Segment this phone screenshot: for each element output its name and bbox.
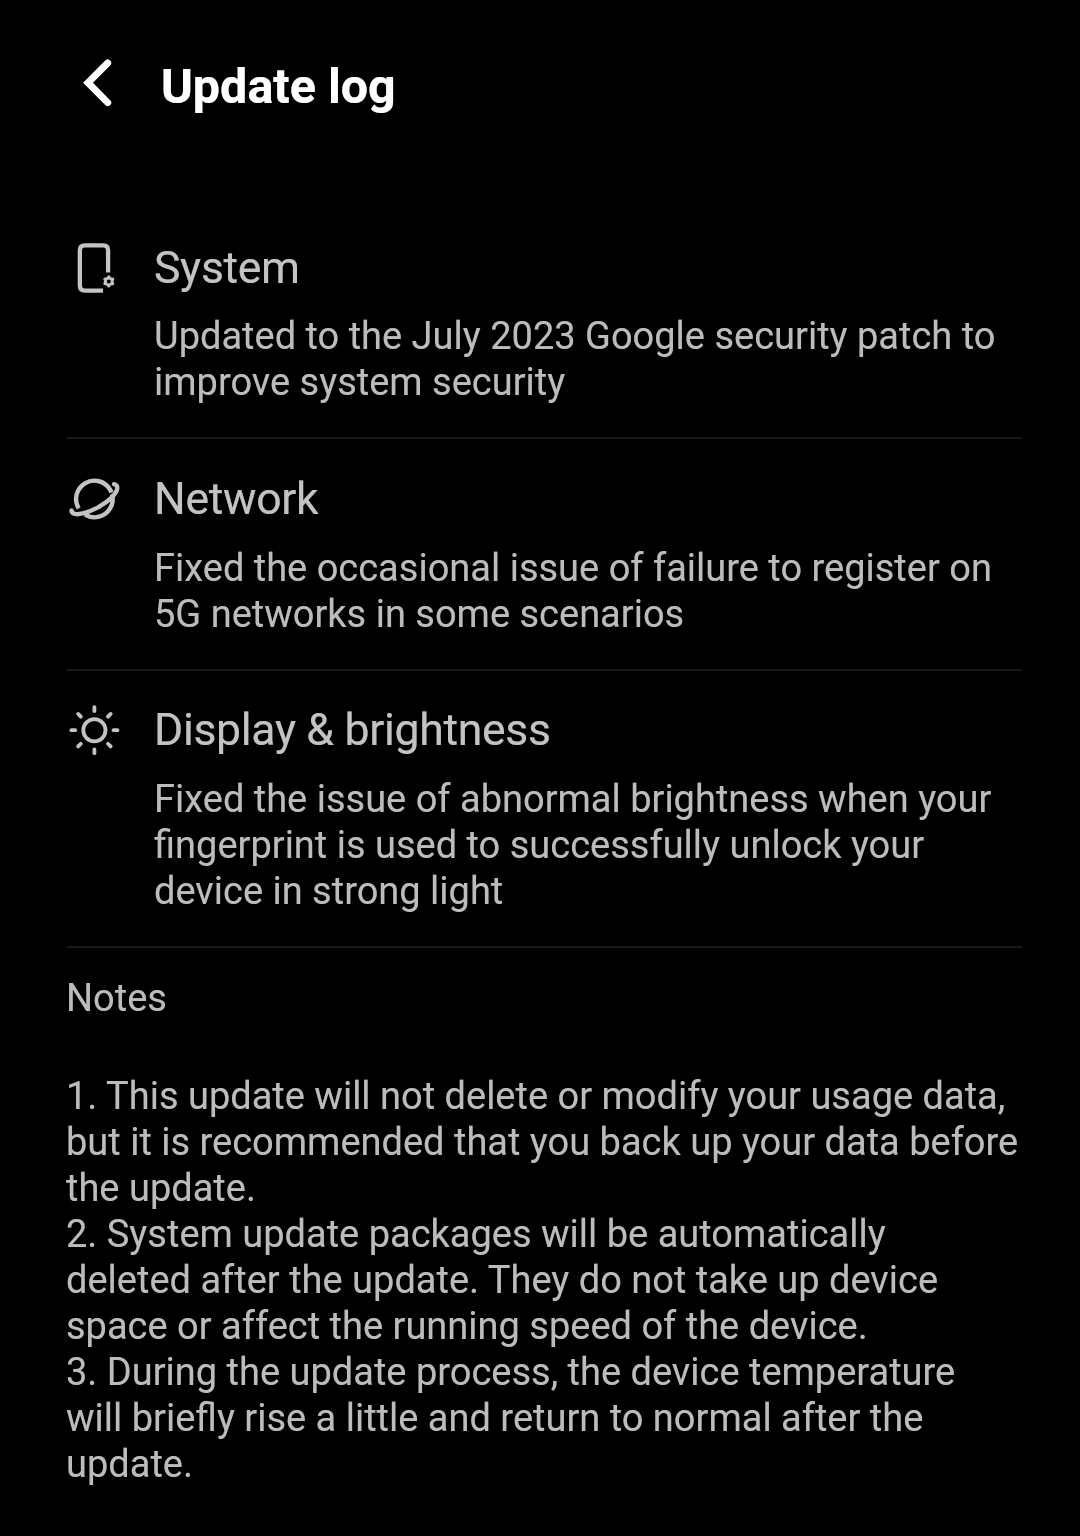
- staticText: System: [154, 240, 300, 294]
- button[interactable]: Back: [60, 47, 132, 119]
- staticText: Update log: [161, 57, 396, 115]
- button[interactable]: Display and brightness update details: [0, 671, 1080, 945]
- staticText: Display & brightness: [154, 702, 551, 756]
- staticText: Updated to the July 2023 Google security…: [154, 313, 1020, 405]
- staticText: Fixed the occasional issue of failure to…: [154, 545, 1020, 637]
- staticText: Network: [154, 471, 319, 525]
- staticText: Notes: [66, 975, 167, 1021]
- staticText: 1. This update will not delete or modify…: [66, 1073, 1020, 1487]
- button[interactable]: System update details: [0, 205, 1080, 437]
- button[interactable]: Network update details: [0, 439, 1080, 668]
- staticText: Fixed the issue of abnormal brightness w…: [154, 776, 1020, 914]
